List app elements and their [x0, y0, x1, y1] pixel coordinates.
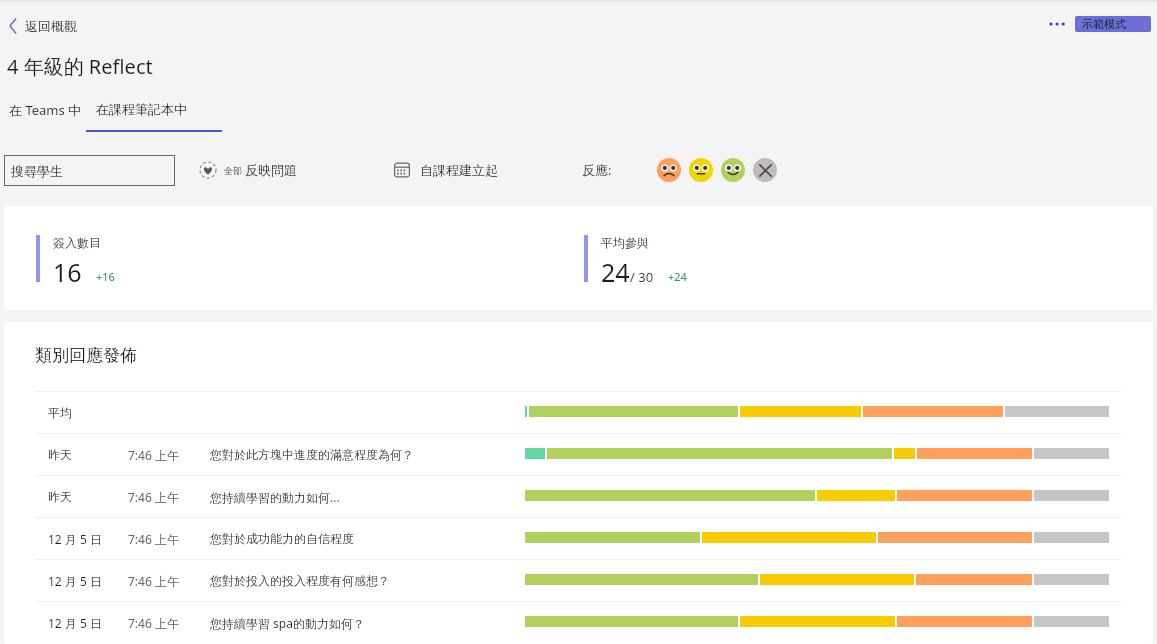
staticText: 示範模式 [1082, 17, 1126, 31]
button[interactable]: 自課程建立起 [394, 162, 498, 178]
button[interactable]: Happy reaction [721, 158, 745, 182]
staticText: 在 Teams 中 [9, 101, 82, 119]
staticText: 全部 [224, 165, 242, 176]
staticText: 7:46 上午 [128, 489, 179, 505]
button[interactable]: 示範模式 [1075, 16, 1151, 32]
staticText: 7:46 上午 [128, 447, 179, 463]
staticText: 4 年級的 Reflect [7, 53, 153, 80]
staticText: 反映問題 [245, 162, 297, 178]
staticText: 您持續學習的動力如何... [210, 489, 340, 505]
staticText: 自課程建立起 [420, 162, 498, 178]
staticText: 簽入數目 [53, 235, 101, 250]
staticText: 您對於投入的投入程度有何感想？ [210, 573, 390, 588]
staticText: 搜尋學生 [11, 163, 63, 179]
button[interactable]: Neutral reaction [689, 158, 713, 182]
staticText: 16 [53, 255, 82, 289]
staticText: 昨天 [48, 447, 72, 462]
button[interactable]: 全部 [199, 161, 297, 179]
staticText: 24 [601, 255, 630, 289]
staticText: 反應: [582, 161, 612, 179]
staticText: 昨天 [48, 489, 72, 504]
staticText: 您對於成功能力的自信程度 [210, 531, 354, 546]
staticText: 12 月 5 日 [48, 615, 102, 631]
button[interactable]: 在 Teams 中 [4, 86, 86, 132]
staticText: 您對於此方塊中進度的滿意程度為何？ [210, 447, 414, 462]
button[interactable]: Sad reaction [657, 158, 681, 182]
button[interactable]: More options [1047, 13, 1069, 35]
button[interactable]: 昨天 [4, 434, 1153, 475]
button[interactable]: 返回概觀 [6, 17, 77, 35]
button[interactable]: 12 月 5 日 [4, 602, 1153, 643]
staticText: +16 [96, 269, 115, 284]
staticText: 7:46 上午 [128, 531, 179, 547]
staticText: 類別回應發佈 [35, 345, 137, 366]
staticText: 在課程筆記本中 [96, 101, 187, 117]
button[interactable]: Clear reaction filter [753, 158, 777, 182]
button[interactable]: 昨天 [4, 476, 1153, 517]
staticText: 12 月 5 日 [48, 531, 102, 547]
staticText: 12 月 5 日 [48, 573, 102, 589]
staticText: 7:46 上午 [128, 573, 179, 589]
staticText: +24 [668, 269, 687, 284]
staticText: 平均參與 [601, 235, 649, 250]
button[interactable]: 搜尋學生 [4, 155, 175, 186]
staticText: 您持續學習 spa的動力如何？ [210, 615, 365, 631]
button[interactable]: 12 月 5 日 [4, 560, 1153, 601]
staticText: 平均 [48, 405, 72, 420]
staticText: 返回概觀 [25, 18, 77, 34]
staticText: / 30 [630, 268, 654, 286]
button[interactable]: 平均 [4, 392, 1153, 433]
button[interactable]: 12 月 5 日 [4, 518, 1153, 559]
button[interactable]: 在課程筆記本中 [86, 86, 222, 132]
staticText: 7:46 上午 [128, 615, 179, 631]
